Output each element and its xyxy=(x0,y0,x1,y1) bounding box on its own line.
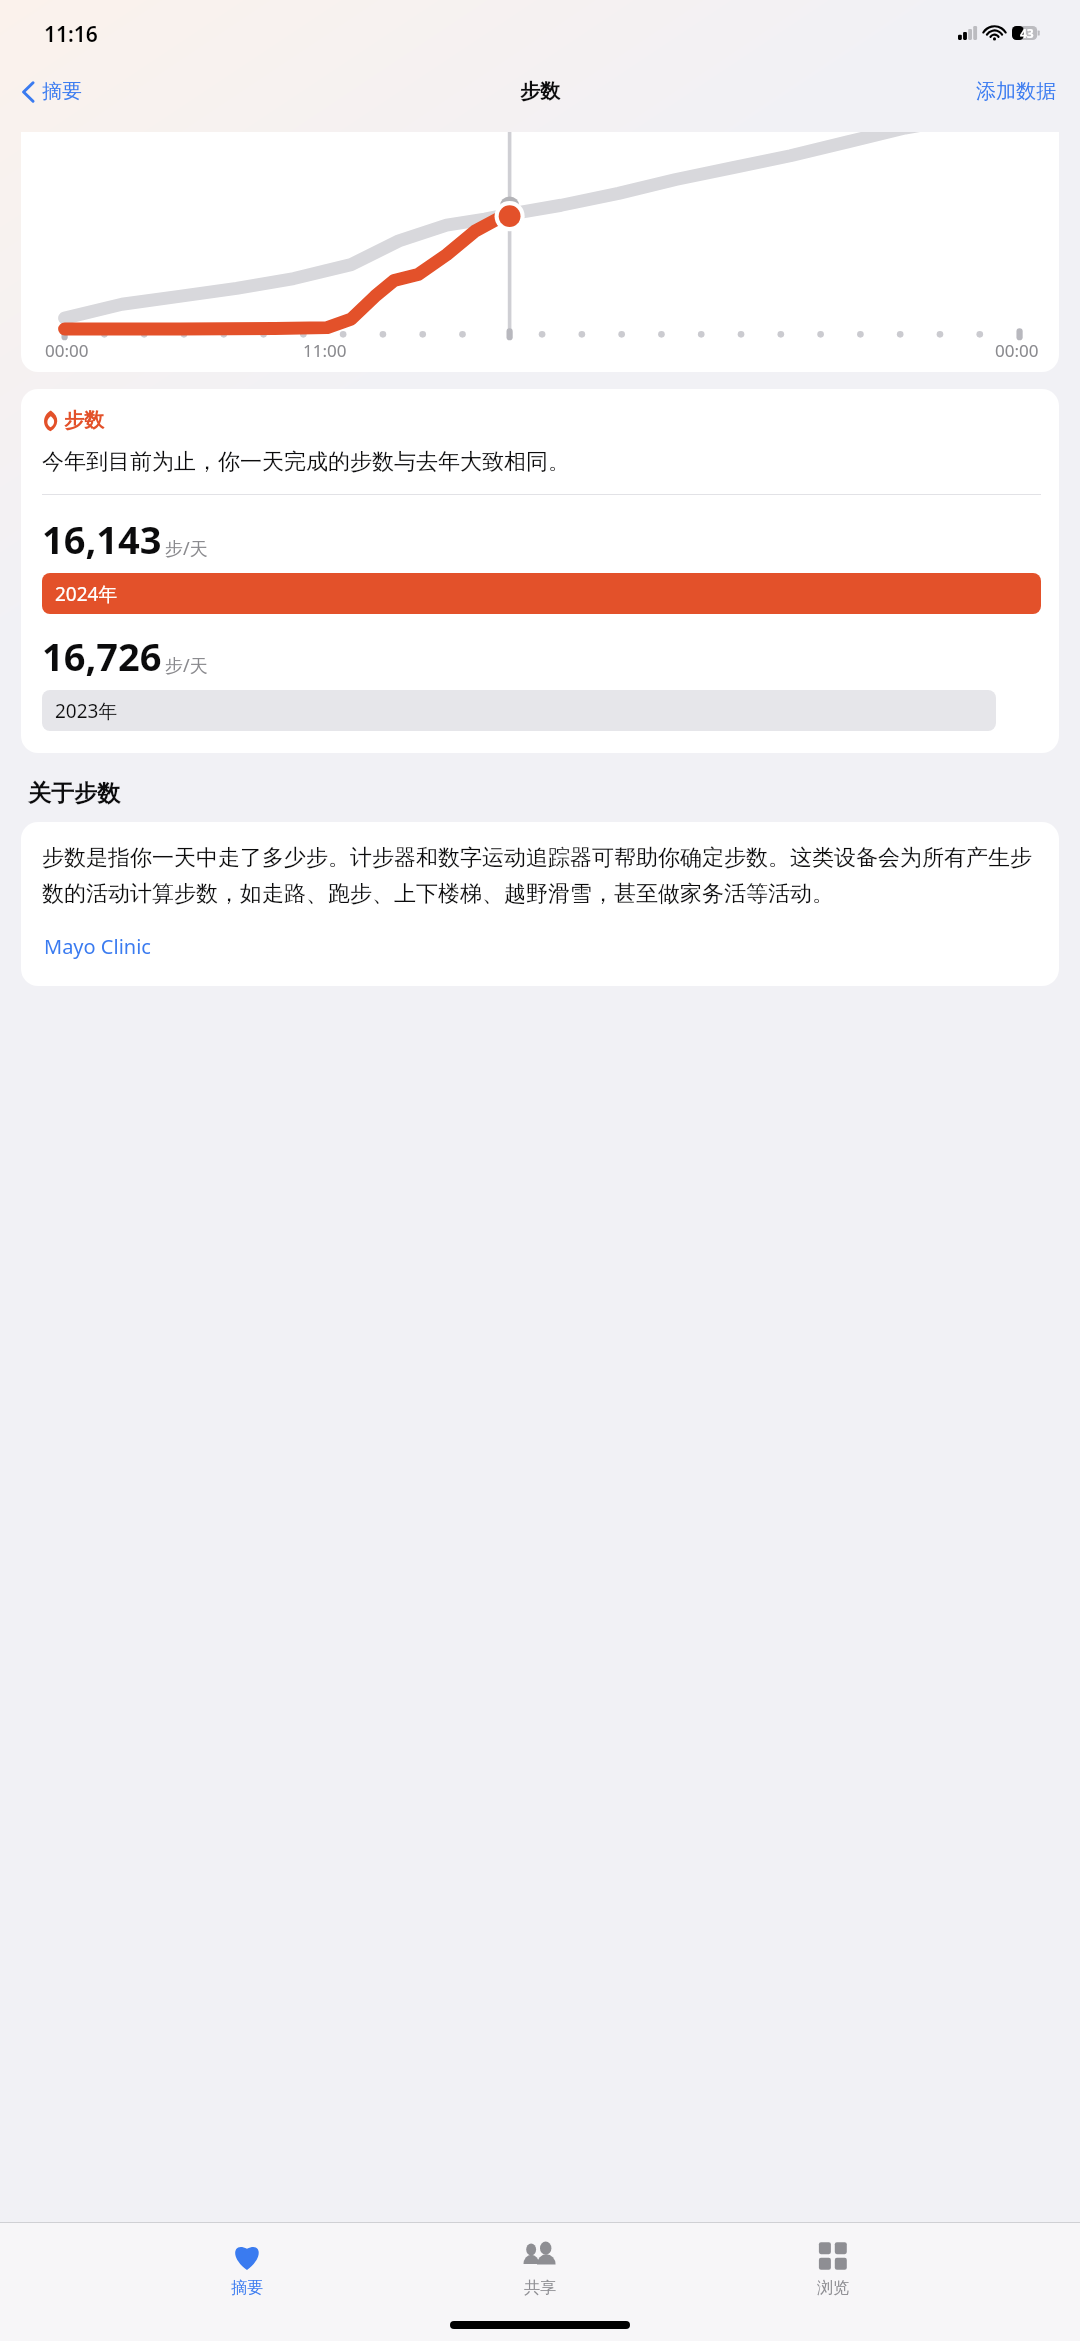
staticText: 今年到目前为止，你一天完成的步数与去年大致相同。 xyxy=(42,448,1011,476)
button[interactable]: 摘要 xyxy=(201,2235,293,2304)
button[interactable]: 步数 xyxy=(21,389,1059,753)
staticText: 浏览 xyxy=(817,2278,849,2298)
button[interactable]: 浏览 xyxy=(787,2235,879,2304)
staticText: 2024年 xyxy=(55,581,118,607)
staticText: 步数 xyxy=(64,408,104,433)
staticText: 00:00 xyxy=(995,339,1039,362)
staticText: 2023年 xyxy=(55,698,118,724)
staticText: 00:00 xyxy=(45,339,89,362)
staticText: 摘要 xyxy=(231,2278,263,2298)
button[interactable]: 摘要 xyxy=(0,75,92,108)
button[interactable]: 共享 xyxy=(494,2235,586,2304)
staticText: 摘要 xyxy=(42,79,82,104)
button[interactable]: 00:00 xyxy=(21,132,1059,372)
button[interactable]: 添加数据 xyxy=(952,71,1080,112)
staticText: 16,726 xyxy=(42,630,162,682)
staticText: 步/天 xyxy=(165,536,208,561)
staticText: 11:16 xyxy=(44,20,98,49)
button[interactable]: Mayo Clinic xyxy=(42,929,153,964)
staticText: 步数是指你一天中走了多少步。计步器和数字运动追踪器可帮助你确定步数。这类设备会为… xyxy=(42,844,1041,907)
staticText: 16,143 xyxy=(42,513,162,565)
staticText: 关于步数 xyxy=(28,779,120,808)
staticText: 11:00 xyxy=(303,339,347,362)
staticText: 43 xyxy=(1020,25,1034,41)
staticText: 步/天 xyxy=(165,653,208,678)
staticText: 共享 xyxy=(524,2278,556,2298)
staticText: 步数 xyxy=(520,79,560,104)
